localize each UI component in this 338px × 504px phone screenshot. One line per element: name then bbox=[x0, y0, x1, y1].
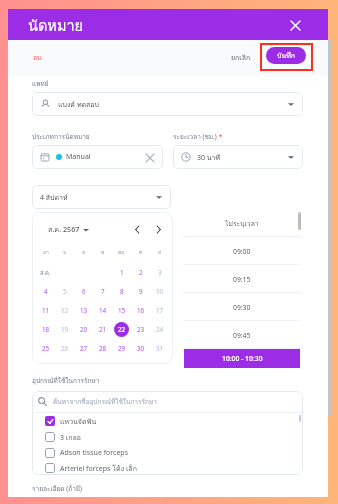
button[interactable]: ค้นหาจากชื่ออุปกรณ์ที่ใช้ในการรักษา bbox=[38, 391, 294, 412]
staticText: แบงค์ ทดสอบ bbox=[58, 99, 99, 110]
staticText: 19 bbox=[61, 325, 69, 334]
staticText: ค้นหาจากชื่ออุปกรณ์ที่ใช้ในการรักษา bbox=[53, 397, 157, 407]
button[interactable]: ไม่ระบุเวลา bbox=[183, 209, 301, 237]
staticText: 09:15 bbox=[233, 275, 251, 284]
staticText: 09:00 bbox=[233, 247, 251, 256]
button[interactable]: 3 bbox=[158, 263, 162, 282]
staticText: พฤ bbox=[118, 248, 125, 256]
staticText: 22 bbox=[118, 325, 126, 334]
staticText: ส.ค. 2567 bbox=[48, 224, 80, 235]
staticText: 28 bbox=[99, 344, 107, 353]
staticText: 26 bbox=[61, 344, 69, 353]
staticText: รายละเอียด (ถ้ามี) bbox=[32, 484, 83, 494]
staticText: 3 bbox=[158, 268, 162, 277]
button[interactable]: 22 bbox=[114, 322, 129, 337]
button[interactable]: 15 bbox=[118, 301, 126, 320]
staticText: ไม่ระบุเวลา bbox=[225, 218, 259, 229]
staticText: ระยะเวลา (ชม.) bbox=[173, 132, 217, 142]
staticText: อ bbox=[82, 248, 86, 256]
staticText: 14 bbox=[99, 306, 107, 315]
button[interactable]: แหวนจัดฟัน bbox=[45, 413, 303, 429]
button[interactable]: 13 bbox=[80, 301, 88, 320]
staticText: 21 bbox=[99, 325, 107, 334]
button[interactable]: 09:30 bbox=[183, 293, 301, 321]
button[interactable]: Next month bbox=[152, 223, 165, 236]
button[interactable]: Arteriel forceps โค้ง เล็ก bbox=[45, 461, 303, 475]
staticText: Adson tissue forceps bbox=[60, 448, 129, 458]
button[interactable]: 25 bbox=[42, 339, 50, 358]
button[interactable]: 3 เกลอ bbox=[45, 429, 303, 445]
staticText: ศ bbox=[139, 248, 143, 256]
button[interactable]: Manual bbox=[40, 145, 155, 169]
button[interactable]: 6 bbox=[82, 282, 86, 301]
staticText: 12 bbox=[61, 306, 69, 315]
button[interactable]: Previous month bbox=[131, 223, 144, 236]
staticText: บันทึก bbox=[277, 50, 296, 61]
staticText: 11 bbox=[42, 306, 50, 315]
staticText: 18 bbox=[42, 325, 50, 334]
button[interactable]: ลบ bbox=[33, 52, 42, 63]
staticText: 3 เกลอ bbox=[60, 432, 81, 443]
button[interactable]: 14 bbox=[99, 301, 107, 320]
button[interactable]: 7 bbox=[101, 282, 105, 301]
button[interactable]: 17 bbox=[156, 301, 164, 320]
staticText: 5 bbox=[63, 287, 67, 296]
button[interactable]: 24 bbox=[156, 320, 164, 339]
button[interactable]: 5 bbox=[63, 282, 67, 301]
staticText: 24 bbox=[156, 325, 164, 334]
staticText: Arteriel forceps โค้ง เล็ก bbox=[60, 463, 137, 474]
staticText: ส.ค. bbox=[40, 268, 51, 277]
button[interactable]: 10 bbox=[156, 282, 164, 301]
button[interactable]: บันทึก bbox=[266, 47, 306, 64]
button[interactable]: ส.ค. 2567 bbox=[48, 224, 89, 235]
button[interactable]: แบงค์ ทดสอบ bbox=[40, 92, 295, 116]
button[interactable]: 20 bbox=[80, 320, 88, 339]
staticText: แหวนจัดฟัน bbox=[60, 416, 97, 427]
button[interactable]: 26 bbox=[61, 339, 69, 358]
staticText: * bbox=[217, 132, 223, 141]
button[interactable]: 19 bbox=[61, 320, 69, 339]
button[interactable]: 4 bbox=[44, 282, 48, 301]
button[interactable]: 23 bbox=[137, 320, 145, 339]
button[interactable]: 27 bbox=[80, 339, 88, 358]
staticText: จ bbox=[63, 248, 66, 256]
staticText: 2 bbox=[139, 268, 143, 277]
button[interactable]: 8 bbox=[120, 282, 124, 301]
staticText: 23 bbox=[137, 325, 145, 334]
staticText: Manual bbox=[66, 152, 91, 162]
button[interactable]: 10:00 - 10:30 bbox=[184, 349, 300, 368]
button[interactable]: 30 นาที bbox=[181, 145, 295, 169]
staticText: 16 bbox=[137, 306, 145, 315]
button[interactable]: 30 bbox=[137, 339, 145, 358]
button[interactable]: 16 bbox=[137, 301, 145, 320]
staticText: 4 bbox=[44, 287, 48, 296]
button[interactable]: Clear bbox=[144, 152, 155, 163]
button[interactable]: 9 bbox=[139, 282, 143, 301]
button[interactable]: 1 bbox=[120, 263, 124, 282]
button[interactable]: 29 bbox=[118, 339, 126, 358]
button[interactable]: 31 bbox=[156, 339, 164, 358]
staticText: 30 bbox=[137, 344, 145, 353]
staticText: 09:30 bbox=[233, 303, 251, 312]
button[interactable]: 09:45 bbox=[183, 321, 301, 349]
button[interactable]: 21 bbox=[99, 320, 107, 339]
button[interactable]: Adson tissue forceps bbox=[45, 445, 303, 461]
button[interactable]: 4 สัปดาห์ bbox=[40, 185, 163, 209]
staticText: 10:00 - 10:30 bbox=[222, 354, 263, 363]
staticText: 17 bbox=[156, 306, 164, 315]
staticText: แพทย์ bbox=[32, 79, 49, 89]
staticText: 30 นาที bbox=[197, 152, 221, 163]
button[interactable]: 09:15 bbox=[183, 265, 301, 293]
button[interactable]: 11 bbox=[42, 301, 50, 320]
button[interactable]: 2 bbox=[139, 263, 143, 282]
button[interactable]: 18 bbox=[42, 320, 50, 339]
button[interactable]: 12 bbox=[61, 301, 69, 320]
staticText: อุปกรณ์ที่ใช้ในการรักษา bbox=[32, 376, 100, 386]
button[interactable]: ยกเลิก bbox=[231, 52, 251, 63]
staticText: 25 bbox=[42, 344, 50, 353]
staticText: อา bbox=[43, 248, 49, 256]
button[interactable]: Close bbox=[287, 17, 303, 33]
staticText: 20 bbox=[80, 325, 88, 334]
button[interactable]: 09:00 bbox=[183, 237, 301, 265]
button[interactable]: 28 bbox=[99, 339, 107, 358]
